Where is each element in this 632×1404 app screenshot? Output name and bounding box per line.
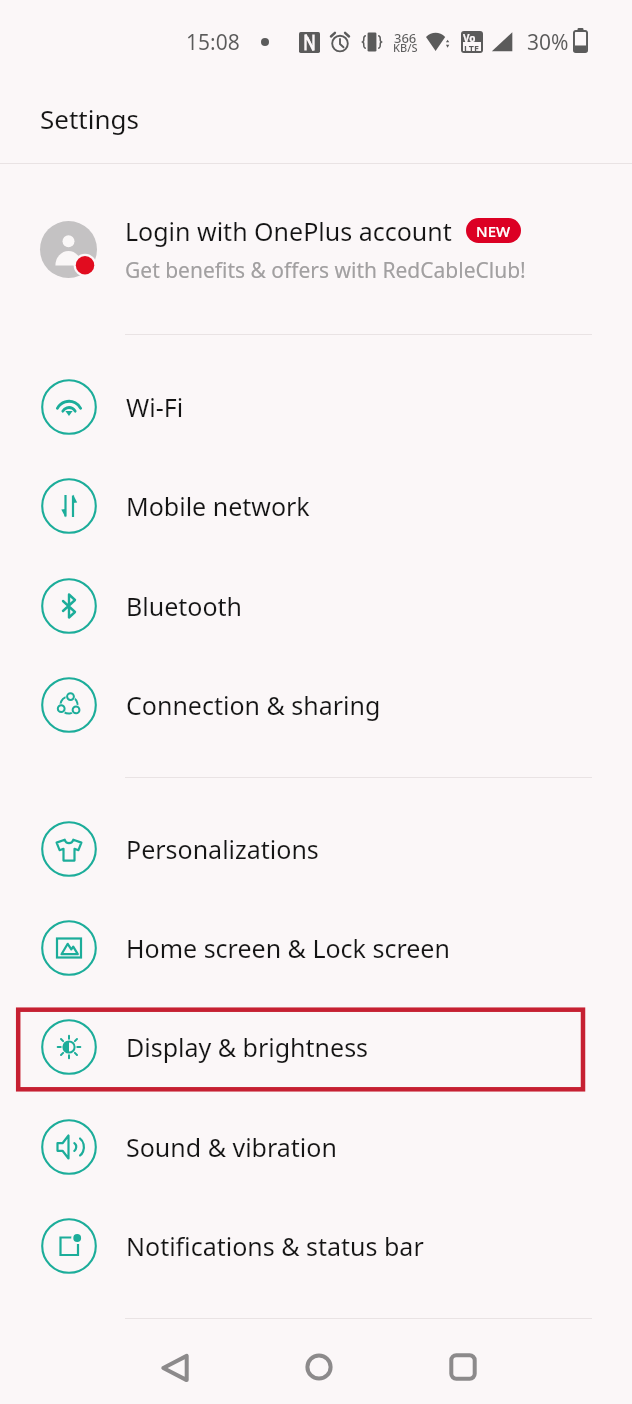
staticText: KB/S — [393, 40, 418, 55]
button[interactable]: Bluetooth — [0, 556, 632, 655]
staticText: Get benefits & offers with RedCableClub! — [125, 256, 526, 285]
button[interactable]: Connection & sharing — [0, 655, 632, 754]
staticText: 366 — [394, 29, 417, 47]
button[interactable]: Home screen & Lock screen — [0, 898, 632, 997]
staticText: NEW — [476, 221, 511, 241]
button[interactable]: Display & brightness — [0, 997, 632, 1096]
button[interactable]: Sound & vibration — [0, 1097, 632, 1196]
staticText: Home screen & Lock screen — [126, 931, 450, 965]
staticText: Notifications & status bar — [126, 1229, 424, 1263]
staticText: Bluetooth — [126, 589, 243, 623]
button[interactable]: Mobile network — [0, 456, 632, 555]
staticText: Wi-Fi — [126, 390, 184, 424]
staticText: Vo — [463, 31, 476, 45]
button[interactable]: Home — [288, 1336, 349, 1397]
staticText: Sound & vibration — [126, 1130, 337, 1164]
button[interactable]: Settings — [0, 73, 632, 163]
staticText: Settings — [40, 101, 139, 136]
button[interactable]: Notifications & status bar — [0, 1196, 632, 1295]
staticText: Display & brightness — [126, 1030, 369, 1064]
staticText: 30% — [527, 28, 569, 57]
button[interactable]: Personalizations — [0, 799, 632, 898]
button[interactable]: Wi-Fi — [0, 357, 632, 456]
staticText: Login with OnePlus account — [125, 214, 452, 248]
staticText: Personalizations — [126, 832, 319, 866]
staticText: Connection & sharing — [126, 688, 381, 722]
button[interactable]: Back — [144, 1337, 205, 1398]
staticText: Mobile network — [126, 489, 310, 523]
button[interactable]: Login with OnePlus account — [0, 180, 632, 315]
button[interactable]: Recents — [432, 1336, 493, 1397]
staticText: 15:08 — [186, 28, 240, 57]
staticText: LTE — [464, 42, 480, 51]
